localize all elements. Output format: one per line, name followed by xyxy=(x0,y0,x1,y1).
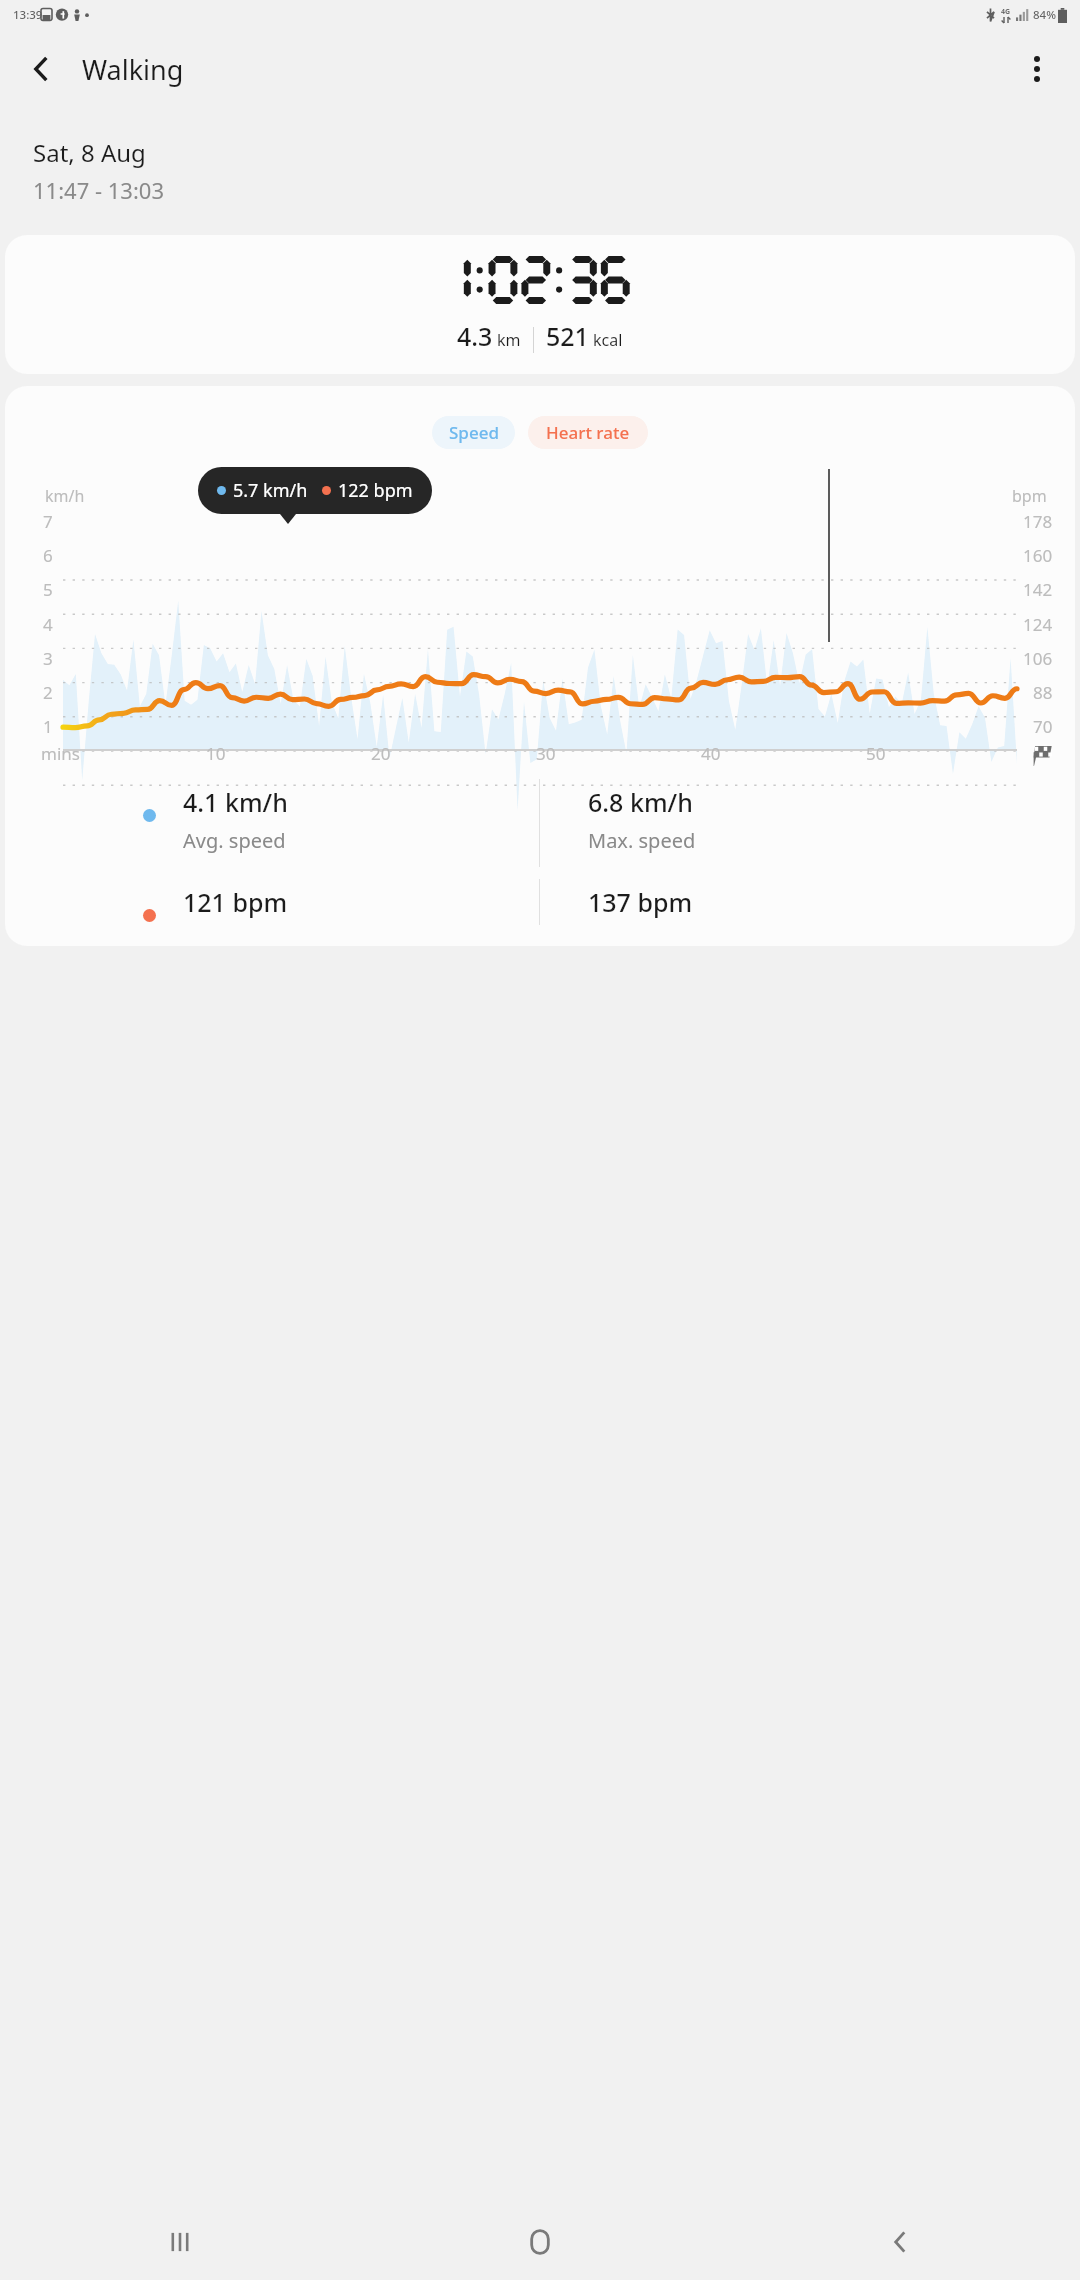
staticText: 5 xyxy=(43,578,53,601)
staticText: 10 xyxy=(206,742,226,765)
staticText: 124 xyxy=(1023,613,1053,636)
staticText: kcal xyxy=(593,329,623,351)
staticText: 160 xyxy=(1023,544,1053,567)
staticText: 70 xyxy=(1033,715,1053,738)
staticText: 178 xyxy=(1023,510,1053,533)
staticText: 521 xyxy=(546,319,589,353)
staticText: 20 xyxy=(371,742,391,765)
staticText: 4.1 km/h xyxy=(183,785,288,819)
staticText: Max. speed xyxy=(588,827,696,854)
staticText: 7 xyxy=(43,510,53,533)
staticText: Avg. speed xyxy=(183,827,286,854)
staticText: Sat, 8 Aug xyxy=(33,136,146,169)
button[interactable]: Recents xyxy=(0,2204,360,2280)
staticText: 50 xyxy=(866,742,886,765)
staticText: km/h xyxy=(45,485,85,507)
staticText: 1 xyxy=(43,715,53,738)
button[interactable]: Heart rate xyxy=(528,416,648,449)
staticText: 11:47 - 13:03 xyxy=(33,175,164,205)
staticText: 30 xyxy=(536,742,556,765)
staticText: 3 xyxy=(43,647,53,670)
staticText: mins xyxy=(41,742,80,765)
button[interactable]: 5.7 km/h xyxy=(217,467,413,514)
staticText: Walking xyxy=(82,51,184,88)
staticText: 122 bpm xyxy=(338,478,413,503)
button[interactable]: Speed xyxy=(432,416,515,449)
staticText: 106 xyxy=(1023,647,1053,670)
staticText: km xyxy=(497,329,521,351)
button[interactable]: Back xyxy=(10,38,72,100)
staticText: 142 xyxy=(1023,578,1053,601)
button[interactable]: 121 bpm xyxy=(5,873,539,931)
staticText: 6.8 km/h xyxy=(588,785,693,819)
staticText: 121 bpm xyxy=(183,885,288,919)
staticText: 13:39 xyxy=(13,7,43,23)
button[interactable]: 6.8 km/h xyxy=(540,773,1075,873)
staticText: 5.7 km/h xyxy=(233,478,308,503)
button[interactable]: 4.1 km/h xyxy=(5,773,539,873)
staticText: 2 xyxy=(43,681,53,704)
button[interactable]: More options xyxy=(1006,38,1068,100)
button[interactable]: Back xyxy=(720,2204,1080,2280)
button[interactable]: 137 bpm xyxy=(540,873,1075,931)
button[interactable]: 4.3 xyxy=(5,235,1075,374)
staticText: 4G xyxy=(1001,7,1011,17)
staticText: Speed xyxy=(449,421,499,444)
staticText: 88 xyxy=(1033,681,1053,704)
button[interactable]: Home xyxy=(360,2204,720,2280)
staticText: 137 bpm xyxy=(588,885,693,919)
staticText: 84% xyxy=(1033,7,1056,23)
staticText: 40 xyxy=(701,742,721,765)
staticText: 6 xyxy=(43,544,53,567)
staticText: Heart rate xyxy=(546,421,630,444)
staticText: 4.3 xyxy=(457,319,493,353)
staticText: bpm xyxy=(1012,485,1047,507)
staticText: 4 xyxy=(43,613,53,636)
